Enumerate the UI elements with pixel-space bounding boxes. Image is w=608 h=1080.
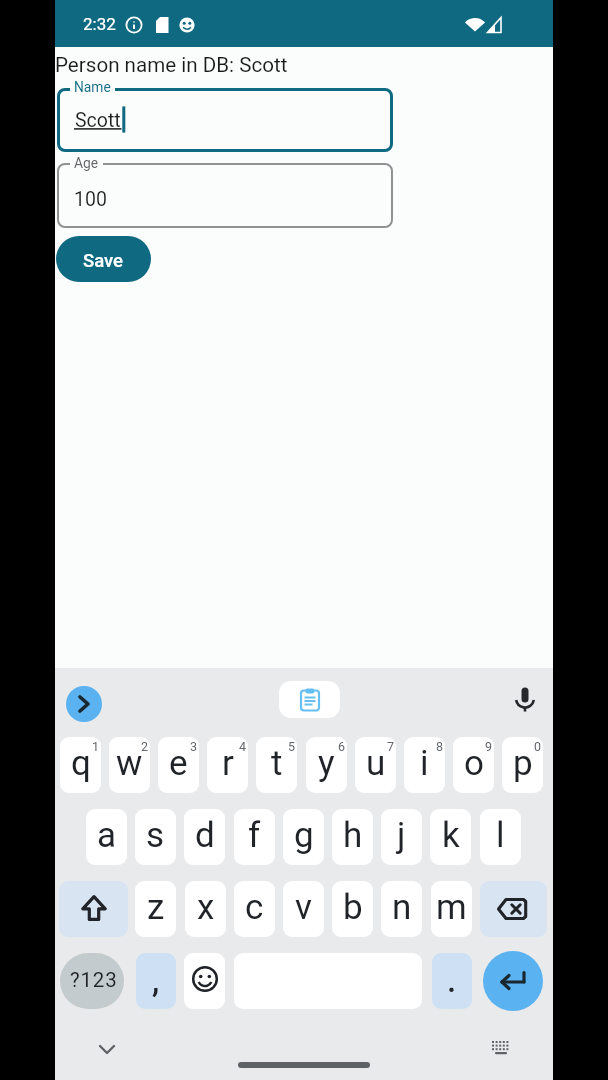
staticText: Save xyxy=(83,250,124,272)
staticText: p xyxy=(513,743,533,784)
button[interactable] xyxy=(279,681,340,718)
button[interactable]: a xyxy=(86,809,127,865)
button[interactable]: x xyxy=(185,881,226,937)
button[interactable]: t xyxy=(256,737,297,793)
staticText: a xyxy=(97,815,117,856)
button[interactable]: e xyxy=(158,737,199,793)
button[interactable]: ?123 xyxy=(60,953,124,1009)
staticText: o xyxy=(464,743,484,784)
staticText: 1 xyxy=(92,739,100,754)
button[interactable]: w xyxy=(109,737,150,793)
button[interactable]: s xyxy=(135,809,176,865)
staticText: 7 xyxy=(387,739,395,754)
staticText: l xyxy=(496,815,505,856)
staticText: n xyxy=(392,887,412,928)
staticText: , xyxy=(152,961,160,1000)
staticText: y xyxy=(318,743,335,784)
staticText: w xyxy=(116,743,143,784)
staticText: z xyxy=(147,887,165,928)
staticText: r xyxy=(222,743,234,784)
staticText: 8 xyxy=(436,739,444,754)
staticText: c xyxy=(245,887,264,928)
staticText: x xyxy=(197,887,215,928)
button[interactable]: b xyxy=(332,881,373,937)
staticText: . xyxy=(447,961,457,1000)
staticText: 2 xyxy=(141,739,149,754)
button[interactable]: i xyxy=(404,737,445,793)
staticText: e xyxy=(169,743,188,784)
button[interactable] xyxy=(57,88,393,152)
staticText: g xyxy=(294,815,314,856)
button[interactable] xyxy=(511,685,539,713)
button[interactable]: j xyxy=(381,809,422,865)
button[interactable]: p xyxy=(502,737,543,793)
staticText: k xyxy=(442,815,460,856)
button[interactable]: . xyxy=(432,953,472,1009)
staticText: u xyxy=(366,743,386,784)
button[interactable] xyxy=(66,686,102,722)
staticText: Person name in DB: Scott xyxy=(55,53,288,77)
staticText: 9 xyxy=(485,739,493,754)
button[interactable] xyxy=(483,951,543,1011)
staticText: b xyxy=(343,887,363,928)
staticText: s xyxy=(146,815,165,856)
button[interactable] xyxy=(184,953,225,1009)
button[interactable]: k xyxy=(430,809,471,865)
staticText: ?123 xyxy=(70,968,118,992)
button[interactable] xyxy=(59,881,128,937)
button[interactable]: y xyxy=(306,737,347,793)
button[interactable]: l xyxy=(480,809,521,865)
button[interactable]: o xyxy=(453,737,494,793)
staticText: 5 xyxy=(288,739,296,754)
button[interactable]: u xyxy=(355,737,396,793)
staticText: j xyxy=(397,815,406,856)
button[interactable]: q xyxy=(60,737,101,793)
button[interactable]: f xyxy=(234,809,275,865)
staticText: d xyxy=(195,815,215,856)
staticText: 0 xyxy=(534,739,542,754)
staticText: 2:32 xyxy=(83,14,116,34)
staticText: Scott xyxy=(75,109,121,132)
button[interactable]: m xyxy=(431,881,472,937)
button[interactable]: h xyxy=(332,809,373,865)
button[interactable]: Save xyxy=(56,236,151,282)
staticText: v xyxy=(295,887,312,928)
button[interactable]: n xyxy=(381,881,422,937)
staticText: i xyxy=(420,743,429,784)
staticText: q xyxy=(71,743,91,784)
staticText: Name xyxy=(74,79,111,95)
staticText: 100 xyxy=(74,188,107,211)
button[interactable]: d xyxy=(184,809,225,865)
staticText: Age xyxy=(74,155,99,171)
staticText: m xyxy=(436,887,467,928)
button[interactable] xyxy=(480,881,547,937)
staticText: 4 xyxy=(239,739,247,754)
staticText: 6 xyxy=(338,739,346,754)
button[interactable]: , xyxy=(136,953,176,1009)
staticText: 3 xyxy=(190,739,198,754)
button[interactable]: g xyxy=(283,809,324,865)
button[interactable]: r xyxy=(207,737,248,793)
button[interactable]: v xyxy=(283,881,324,937)
staticText: h xyxy=(343,815,363,856)
button[interactable] xyxy=(57,163,393,228)
button[interactable]: c xyxy=(234,881,275,937)
staticText: f xyxy=(248,815,261,856)
staticText: t xyxy=(271,743,283,784)
button[interactable]: z xyxy=(135,881,176,937)
